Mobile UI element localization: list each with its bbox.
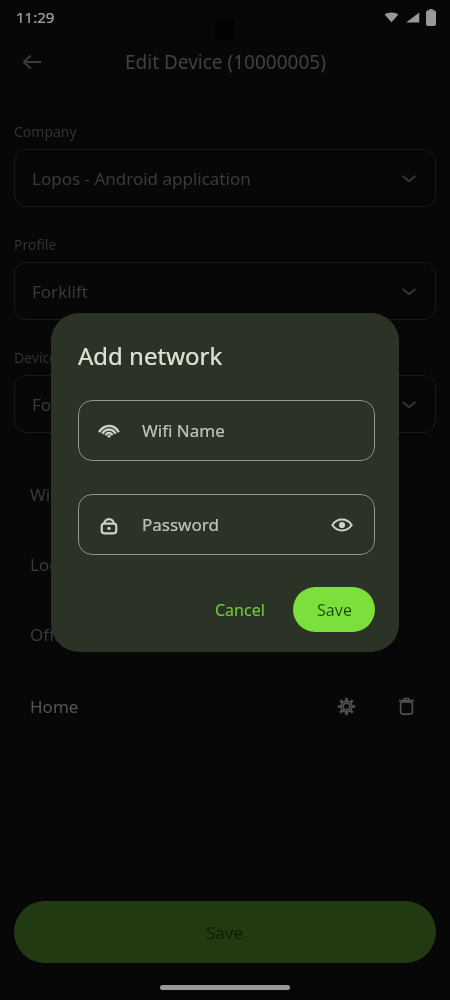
staticText: 11:29 xyxy=(16,7,55,27)
staticText: Forklift small xyxy=(32,393,400,416)
button[interactable]: Home xyxy=(0,679,450,733)
button[interactable]: Settings xyxy=(326,686,366,726)
staticText: Wifi networks xyxy=(30,483,139,506)
button[interactable]: Back xyxy=(10,40,54,84)
button[interactable]: Wifi Name xyxy=(78,400,375,461)
staticText: Edit Device (10000005) xyxy=(125,49,326,75)
button[interactable]: Delete xyxy=(386,686,426,726)
button[interactable]: Save xyxy=(293,587,375,632)
staticText: Add network xyxy=(78,339,223,372)
button[interactable]: Forklift small xyxy=(14,375,436,433)
staticText: Home xyxy=(30,695,326,718)
button[interactable]: Offline mode xyxy=(0,599,450,669)
button[interactable]: Wifi networks xyxy=(0,459,450,529)
staticText: Company xyxy=(14,122,77,141)
staticText: Password xyxy=(142,513,327,536)
button[interactable]: Password xyxy=(78,494,375,555)
staticText: Save xyxy=(317,599,352,621)
staticText: Offline mode xyxy=(30,623,135,646)
button[interactable]: Cancel xyxy=(201,589,279,631)
staticText: Save xyxy=(206,921,244,944)
staticText: Device type xyxy=(14,348,90,367)
button[interactable]: Forklift xyxy=(14,262,436,320)
button[interactable]: Location tracking xyxy=(0,529,450,599)
staticText: Cancel xyxy=(215,599,265,621)
staticText: Profile xyxy=(14,235,57,254)
button[interactable]: Save xyxy=(14,901,436,963)
button[interactable]: Lopos - Android application xyxy=(14,149,436,207)
staticText: Location tracking xyxy=(30,553,168,576)
staticText: Forklift xyxy=(32,280,400,303)
button[interactable]: Show password xyxy=(327,510,357,540)
staticText: Lopos - Android application xyxy=(32,167,400,190)
staticText: Wifi Name xyxy=(142,419,357,442)
